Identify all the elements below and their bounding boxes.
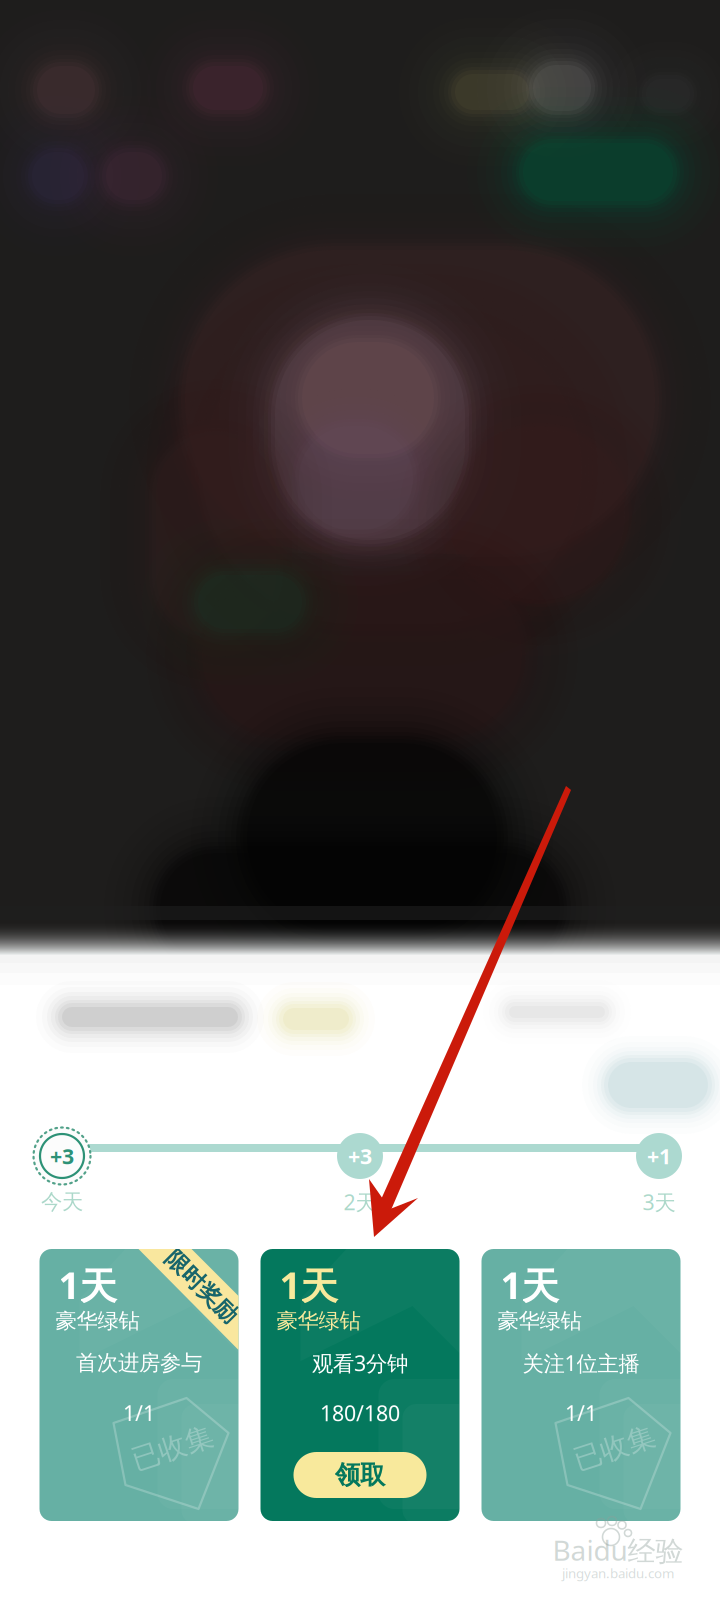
staticText: Baidu经验 (552, 1531, 683, 1569)
button[interactable]: 已收集 (39, 1249, 238, 1521)
staticText: +3 (348, 1142, 372, 1170)
button[interactable]: 1天 (260, 1249, 459, 1521)
staticText: 已收集 (572, 1431, 656, 1465)
button[interactable]: +1 (614, 1125, 704, 1217)
staticText: 1天 (279, 1260, 337, 1310)
staticText: +3 (50, 1142, 74, 1170)
staticText: 领取 (335, 1459, 385, 1490)
button[interactable]: +3 (315, 1125, 405, 1217)
staticText: 2天 (343, 1188, 376, 1216)
staticText: 首次进房参与 (76, 1350, 202, 1376)
staticText: 关注1位主播 (522, 1349, 639, 1377)
staticText: 今天 (41, 1189, 83, 1215)
staticText: 豪华绿钻 (276, 1308, 360, 1334)
button[interactable]: 已收集 (481, 1249, 680, 1521)
staticText: 已收集 (130, 1431, 214, 1465)
staticText: 1天 (500, 1260, 558, 1310)
staticText: 1/1 (123, 1399, 155, 1427)
staticText: jingyan.baidu.com (562, 1564, 674, 1582)
staticText: 1天 (58, 1260, 116, 1310)
staticText: 限时奖励 (155, 1273, 247, 1301)
button[interactable]: +3 (17, 1125, 107, 1217)
staticText: 豪华绿钻 (55, 1308, 139, 1334)
staticText: 1/1 (565, 1399, 597, 1427)
staticText: 观看3分钟 (312, 1349, 408, 1377)
staticText: +1 (647, 1142, 671, 1170)
staticText: 3天 (642, 1188, 675, 1216)
staticText: 豪华绿钻 (497, 1308, 581, 1334)
staticText: 180/180 (320, 1399, 400, 1427)
